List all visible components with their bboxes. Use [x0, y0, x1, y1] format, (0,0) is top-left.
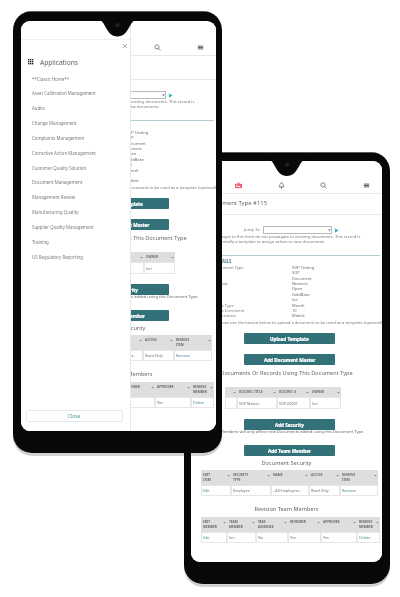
staticText: Documents Or Records Using This Document…	[191, 369, 382, 377]
staticText: Numeric	[292, 281, 309, 286]
button[interactable]: Asset Calibration Management	[21, 85, 131, 100]
staticText: Revision Team Members	[191, 505, 382, 513]
staticText: Revision Team Members	[25, 370, 216, 378]
staticText: Employee	[233, 488, 250, 493]
staticText: Read Only	[145, 353, 163, 358]
staticText: Yes	[290, 535, 296, 540]
button[interactable]: Add Team Member	[78, 310, 169, 321]
staticText: SOP-00001	[113, 266, 132, 271]
button[interactable]: US Regulatory Reporting	[21, 249, 131, 264]
staticText: 10	[292, 308, 297, 313]
staticText: Add Security	[275, 422, 304, 428]
staticText: DOC/REC #	[279, 390, 306, 394]
staticText: EDIT MEMBER	[203, 520, 223, 529]
staticText: Upload Template	[270, 336, 309, 342]
staticText: Mobile	[292, 313, 305, 318]
staticText: DETAILS	[214, 258, 232, 264]
button[interactable]: **Classic Home**	[21, 71, 131, 86]
button[interactable]: Complaints Management	[21, 130, 131, 145]
staticText: Yes	[323, 535, 329, 540]
staticText: REVIEWER	[124, 385, 151, 389]
staticText: SOP-00001	[279, 401, 298, 406]
button[interactable]: Add Security	[244, 419, 335, 430]
staticText: Cycle Increment	[214, 308, 245, 313]
button[interactable]: Add Team Member	[244, 445, 335, 456]
button[interactable]: Search	[316, 178, 331, 193]
staticText: Add Document Master	[264, 357, 316, 363]
button[interactable]: Menu	[359, 178, 374, 193]
staticText: Add Team Member	[268, 448, 311, 454]
button[interactable]: Add Document Master	[78, 219, 169, 230]
staticText: Complaints Management	[32, 135, 85, 141]
staticText: Jump To:	[78, 92, 95, 98]
button[interactable]: Document Management	[21, 174, 131, 189]
staticText: SECURITY TYPE	[233, 473, 267, 482]
button[interactable]: Supplier Quality Management	[21, 219, 131, 234]
staticText: 10	[126, 173, 131, 178]
staticText: Document Type #115	[208, 199, 268, 207]
staticText: TEAM MEMBER	[229, 520, 252, 529]
staticText: Restrictions	[214, 313, 236, 318]
staticText: Add Document Master	[98, 222, 150, 228]
button[interactable]	[97, 91, 166, 99]
staticText: ACCESS	[311, 473, 336, 477]
staticText: Asset Calibration Management	[32, 90, 96, 96]
button[interactable]: Customer Quality Solution	[21, 160, 131, 175]
staticText: REMOVE MEMBER	[193, 385, 210, 394]
button[interactable]	[263, 226, 332, 234]
staticText: Month	[126, 168, 139, 173]
button[interactable]: Close drawer	[120, 41, 130, 51]
button[interactable]: Menu	[193, 40, 208, 55]
staticText: --All Employees--	[273, 488, 302, 493]
staticText: Cycle Type	[48, 168, 68, 173]
staticText: APPROVER	[323, 520, 353, 524]
staticText: Manufacturing Quality	[32, 209, 79, 215]
button[interactable]: Training	[21, 234, 131, 249]
staticText: lori	[126, 162, 133, 167]
staticText: OWNER	[312, 390, 337, 394]
button[interactable]: Add Document Master	[244, 354, 335, 365]
staticText: SOP Master	[239, 401, 260, 406]
button[interactable]: Notifications	[274, 178, 289, 193]
button[interactable]: Search	[150, 40, 165, 55]
staticText: Close	[68, 413, 81, 420]
staticText: SOP	[292, 270, 300, 275]
button[interactable]: Change Management	[21, 115, 131, 130]
button[interactable]: Go	[168, 93, 173, 98]
button[interactable]: Close	[26, 410, 123, 422]
staticText: lori	[292, 297, 299, 302]
button[interactable]: App	[231, 178, 246, 193]
staticText: Open	[292, 286, 303, 291]
staticText: REVIEWER	[290, 520, 317, 524]
button[interactable]: Add Security	[78, 284, 169, 295]
button[interactable]: Corrective Action Management	[21, 145, 131, 160]
staticText: Corrective Action Management	[32, 150, 96, 156]
button[interactable]: Go	[334, 228, 339, 233]
staticText: **Classic Home**	[32, 76, 70, 82]
staticText: Delete	[359, 535, 371, 540]
staticText: OWNER	[146, 255, 171, 259]
staticText: DETAILS	[48, 123, 66, 129]
button[interactable]: Upload Template	[244, 333, 335, 344]
button[interactable]: Audits	[21, 100, 131, 115]
button[interactable]: Management Review	[21, 189, 131, 204]
staticText: NAME	[273, 473, 305, 477]
staticText: Training	[32, 239, 49, 245]
button[interactable]: Applications	[28, 56, 78, 68]
staticText: Yes	[157, 400, 163, 405]
staticText: Management Review	[32, 194, 76, 200]
button[interactable]: Manufacturing Quality	[21, 204, 131, 219]
staticText: lori	[229, 535, 235, 540]
staticText: Remove	[176, 353, 190, 358]
button[interactable]: Upload Template	[78, 198, 169, 209]
staticText: Team Members will only affect new Docume…	[25, 294, 216, 300]
staticText: Read Only	[311, 488, 329, 493]
